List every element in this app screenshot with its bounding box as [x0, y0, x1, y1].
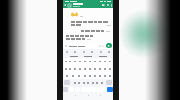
button[interactable] — [107, 72, 112, 79]
button[interactable] — [82, 65, 87, 72]
button[interactable] — [97, 65, 102, 72]
button[interactable] — [77, 58, 82, 65]
button[interactable] — [70, 72, 76, 79]
button[interactable] — [87, 65, 92, 72]
button[interactable] — [82, 72, 87, 79]
button[interactable] — [97, 72, 102, 79]
button[interactable]: Back — [64, 4, 66, 6]
button[interactable] — [102, 72, 107, 79]
button[interactable] — [68, 65, 72, 72]
button[interactable] — [87, 58, 92, 65]
button[interactable] — [87, 72, 92, 79]
button[interactable] — [76, 72, 82, 79]
button[interactable] — [92, 65, 97, 72]
button[interactable] — [92, 72, 97, 79]
button[interactable] — [77, 65, 82, 72]
button[interactable]: Shift — [64, 80, 70, 85]
button[interactable]: Symbols — [63, 87, 68, 92]
button[interactable]: Keyboard tool — [91, 51, 93, 53]
button[interactable] — [72, 65, 77, 72]
button[interactable] — [97, 58, 102, 65]
button[interactable]: Video call — [102, 4, 105, 6]
button[interactable] — [64, 72, 70, 79]
button[interactable] — [64, 65, 68, 72]
button[interactable]: Enter — [107, 87, 113, 92]
button[interactable] — [68, 58, 72, 65]
button[interactable] — [82, 58, 87, 65]
button[interactable] — [102, 65, 107, 72]
button[interactable] — [107, 65, 112, 72]
button[interactable] — [92, 58, 97, 65]
button[interactable] — [64, 58, 68, 65]
button[interactable] — [72, 58, 77, 65]
button[interactable] — [102, 58, 107, 65]
button[interactable]: Keyboard tool — [108, 51, 110, 53]
button[interactable] — [64, 43, 105, 48]
button[interactable] — [107, 58, 112, 65]
button[interactable]: Backspace — [106, 80, 112, 85]
button[interactable]: Keyboard tool — [74, 51, 76, 53]
button[interactable]: Send — [106, 43, 112, 48]
